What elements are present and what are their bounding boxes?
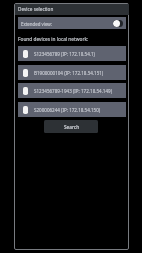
staticText: Extended view: <box>21 21 52 27</box>
staticText: Device selection <box>18 6 54 12</box>
staticText: Search <box>64 124 80 130</box>
button[interactable]: S200006244 (IP: 172.18.54.150) <box>18 102 126 117</box>
button[interactable]: B1900000104 (IP: 172.18.54.151) <box>18 65 126 80</box>
button[interactable]: Search <box>44 120 98 133</box>
staticText: Found devices in local network: <box>18 36 89 43</box>
button[interactable]: S123456789-1943 (IP: 172.18.54.149) <box>18 83 126 98</box>
staticText: B1900000104 (IP: 172.18.54.151) <box>34 70 104 76</box>
button[interactable]: Extended view: <box>18 17 126 29</box>
staticText: S200006244 (IP: 172.18.54.150) <box>34 107 101 113</box>
staticText: S123456789 (IP: 172.18.54.1) <box>34 51 95 57</box>
button[interactable]: S123456789 (IP: 172.18.54.1) <box>18 46 126 61</box>
staticText: S123456789-1943 (IP: 172.18.54.149) <box>34 88 113 94</box>
